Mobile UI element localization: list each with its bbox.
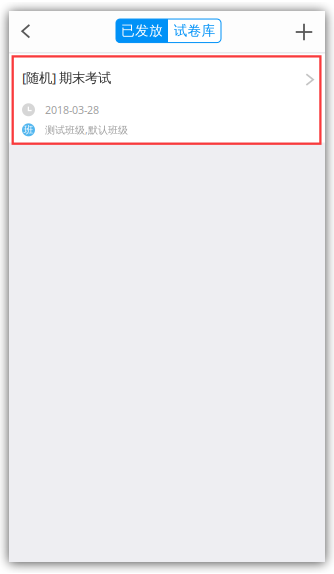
staticText: 试卷库: [173, 22, 215, 39]
button[interactable]: 已发放: [116, 19, 168, 43]
staticText: 班: [23, 123, 33, 136]
button[interactable]: 试卷库: [168, 19, 221, 43]
button[interactable]: [随机] 期末考试: [9, 53, 325, 142]
staticText: 已发放: [121, 22, 163, 39]
staticText: 2018-03-28: [45, 102, 99, 117]
staticText: 测试班级,默认班级: [45, 123, 128, 137]
staticText: [随机] 期末考试: [22, 68, 111, 86]
button[interactable]: Back: [9, 14, 43, 48]
button[interactable]: Add: [287, 15, 321, 49]
